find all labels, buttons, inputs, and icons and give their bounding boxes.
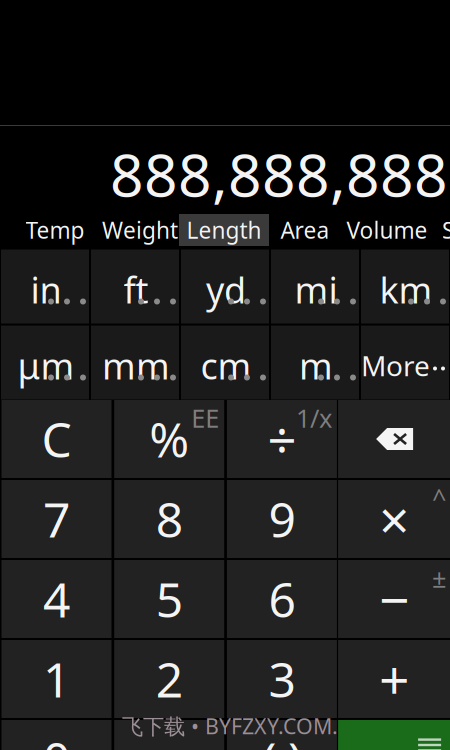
staticText: 1 [43, 647, 70, 711]
button[interactable]: 3 [227, 640, 337, 718]
staticText: in [30, 266, 61, 313]
button[interactable]: mm [91, 325, 179, 399]
staticText: 888,888,888 [110, 135, 448, 213]
staticText: 6 [268, 567, 295, 631]
staticText: μm [17, 342, 74, 389]
button[interactable] [338, 720, 450, 750]
button[interactable]: 9 [227, 480, 337, 558]
staticText: 0 [43, 727, 70, 750]
staticText: ft [123, 266, 148, 313]
button[interactable]: Area [271, 214, 339, 246]
button[interactable]: Weight [98, 214, 182, 246]
staticText: 2 [156, 647, 183, 711]
button[interactable]: 8 [114, 480, 224, 558]
staticText: % [149, 407, 189, 471]
button[interactable]: ( ) [227, 720, 337, 750]
staticText: 8 [156, 487, 183, 551]
staticText: C [41, 407, 71, 471]
button[interactable]: 6 [227, 560, 337, 638]
button[interactable]: 5 [114, 560, 224, 638]
button[interactable]: Length [179, 214, 269, 246]
button[interactable]: + [338, 640, 450, 718]
staticText: EE [191, 401, 219, 435]
staticText: ^ [432, 481, 446, 515]
button[interactable]: km [361, 249, 449, 323]
staticText: mm [102, 342, 170, 389]
staticText: 5 [156, 567, 183, 631]
button[interactable]: mi [271, 249, 359, 323]
button[interactable]: More [361, 325, 449, 399]
staticText: Area [280, 215, 329, 245]
button[interactable]: m [271, 325, 359, 399]
button[interactable]: × [338, 480, 450, 558]
staticText: S [442, 215, 450, 245]
staticText: 4 [43, 567, 70, 631]
button[interactable]: ÷ [227, 400, 337, 478]
button[interactable]: 4 [1, 560, 111, 638]
staticText: yd [206, 266, 246, 313]
button[interactable]: . [114, 720, 224, 750]
button[interactable]: − [338, 560, 450, 638]
staticText: cm [200, 342, 251, 389]
button[interactable]: 0 [1, 720, 111, 750]
staticText: Length [186, 215, 261, 245]
staticText: × [379, 484, 410, 554]
staticText: − [379, 564, 410, 634]
button[interactable]: Temp [13, 214, 97, 246]
staticText: ÷ [267, 405, 296, 473]
staticText: 7 [43, 487, 70, 551]
staticText: Volume [346, 215, 427, 245]
button[interactable] [338, 400, 450, 478]
staticText: km [379, 266, 432, 313]
staticText: ± [432, 561, 446, 595]
button[interactable]: Volume [342, 214, 432, 246]
button[interactable]: 7 [1, 480, 111, 558]
staticText: + [379, 644, 410, 714]
staticText: 3 [268, 647, 295, 711]
staticText: 9 [268, 487, 295, 551]
staticText: mi [294, 266, 337, 313]
button[interactable]: ft [91, 249, 179, 323]
staticText: 1/x [296, 401, 332, 435]
button[interactable]: μm [1, 325, 89, 399]
staticText: Temp [25, 215, 84, 245]
staticText: . [163, 727, 176, 750]
button[interactable]: 2 [114, 640, 224, 718]
staticText: Weight [102, 215, 178, 245]
staticText: m [299, 342, 333, 389]
button[interactable]: in [1, 249, 89, 323]
staticText: ( ) [262, 727, 302, 750]
button[interactable]: % [114, 400, 224, 478]
staticText: 飞下载 • BYFZXY.COM. [122, 712, 338, 740]
button[interactable]: cm [181, 325, 269, 399]
button[interactable]: 1 [1, 640, 111, 718]
button[interactable]: C [1, 400, 111, 478]
button[interactable]: yd [181, 249, 269, 323]
staticText: More [361, 347, 430, 384]
button[interactable]: S [428, 214, 450, 246]
